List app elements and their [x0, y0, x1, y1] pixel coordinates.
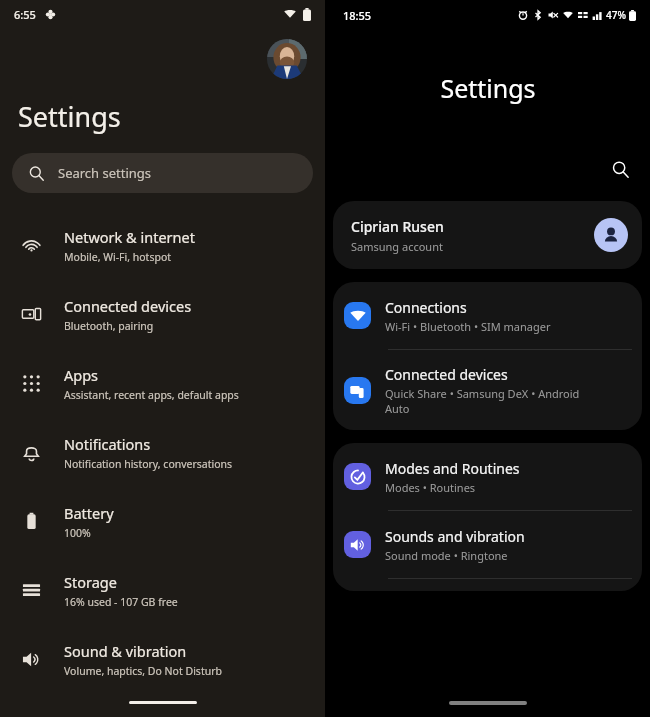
staticText: 100%: [64, 526, 91, 540]
button[interactable]: Connections: [333, 282, 642, 349]
staticText: 16% used - 107 GB free: [64, 595, 178, 609]
staticText: Notification history, conversations: [64, 457, 233, 471]
staticText: 47%: [606, 8, 626, 22]
staticText: Ciprian Rusen: [351, 217, 444, 236]
staticText: Connected devices: [64, 296, 192, 316]
staticText: Samsung account: [351, 239, 443, 254]
staticText: Wi-Fi • Bluetooth • SIM manager: [385, 319, 551, 334]
staticText: 6:55: [14, 7, 36, 22]
button[interactable]: Storage: [0, 556, 325, 625]
button[interactable]: Sound & vibration: [0, 625, 325, 694]
staticText: Modes and Routines: [385, 459, 520, 478]
button[interactable]: Connected devices: [0, 280, 325, 349]
button[interactable]: Account avatar: [267, 39, 307, 79]
button[interactable]: Search: [603, 152, 637, 186]
button[interactable]: Network & internet: [0, 211, 325, 280]
button[interactable]: Battery: [0, 487, 325, 556]
button[interactable]: Apps: [0, 349, 325, 418]
staticText: Modes • Routines: [385, 480, 476, 495]
staticText: Volume, haptics, Do Not Disturb: [64, 664, 222, 678]
staticText: Sound mode • Ringtone: [385, 548, 508, 563]
staticText: Notifications: [64, 434, 151, 454]
staticText: Bluetooth, pairing: [64, 319, 154, 333]
button[interactable]: Search settings: [12, 153, 313, 193]
button[interactable]: Notifications: [0, 418, 325, 487]
staticText: Battery: [64, 503, 114, 523]
staticText: Storage: [64, 572, 117, 592]
staticText: 18:55: [343, 8, 372, 23]
staticText: Network & internet: [64, 227, 195, 247]
button[interactable]: Modes and Routines: [333, 443, 642, 510]
staticText: Connections: [385, 298, 467, 317]
staticText: Sound & vibration: [64, 641, 187, 661]
staticText: Apps: [64, 365, 99, 385]
staticText: Quick Share • Samsung DeX • Android Auto: [385, 386, 580, 416]
staticText: Settings: [18, 98, 121, 135]
staticText: Assistant, recent apps, default apps: [64, 388, 239, 402]
staticText: Connected devices: [385, 365, 508, 384]
staticText: Mobile, Wi-Fi, hotspot: [64, 250, 172, 264]
button[interactable]: Sounds and vibration: [333, 511, 642, 578]
button[interactable]: Connected devices: [333, 350, 642, 430]
staticText: Sounds and vibration: [385, 527, 525, 546]
staticText: Settings: [440, 71, 536, 105]
staticText: Search settings: [58, 164, 152, 182]
button[interactable]: Ciprian Rusen: [333, 201, 642, 269]
